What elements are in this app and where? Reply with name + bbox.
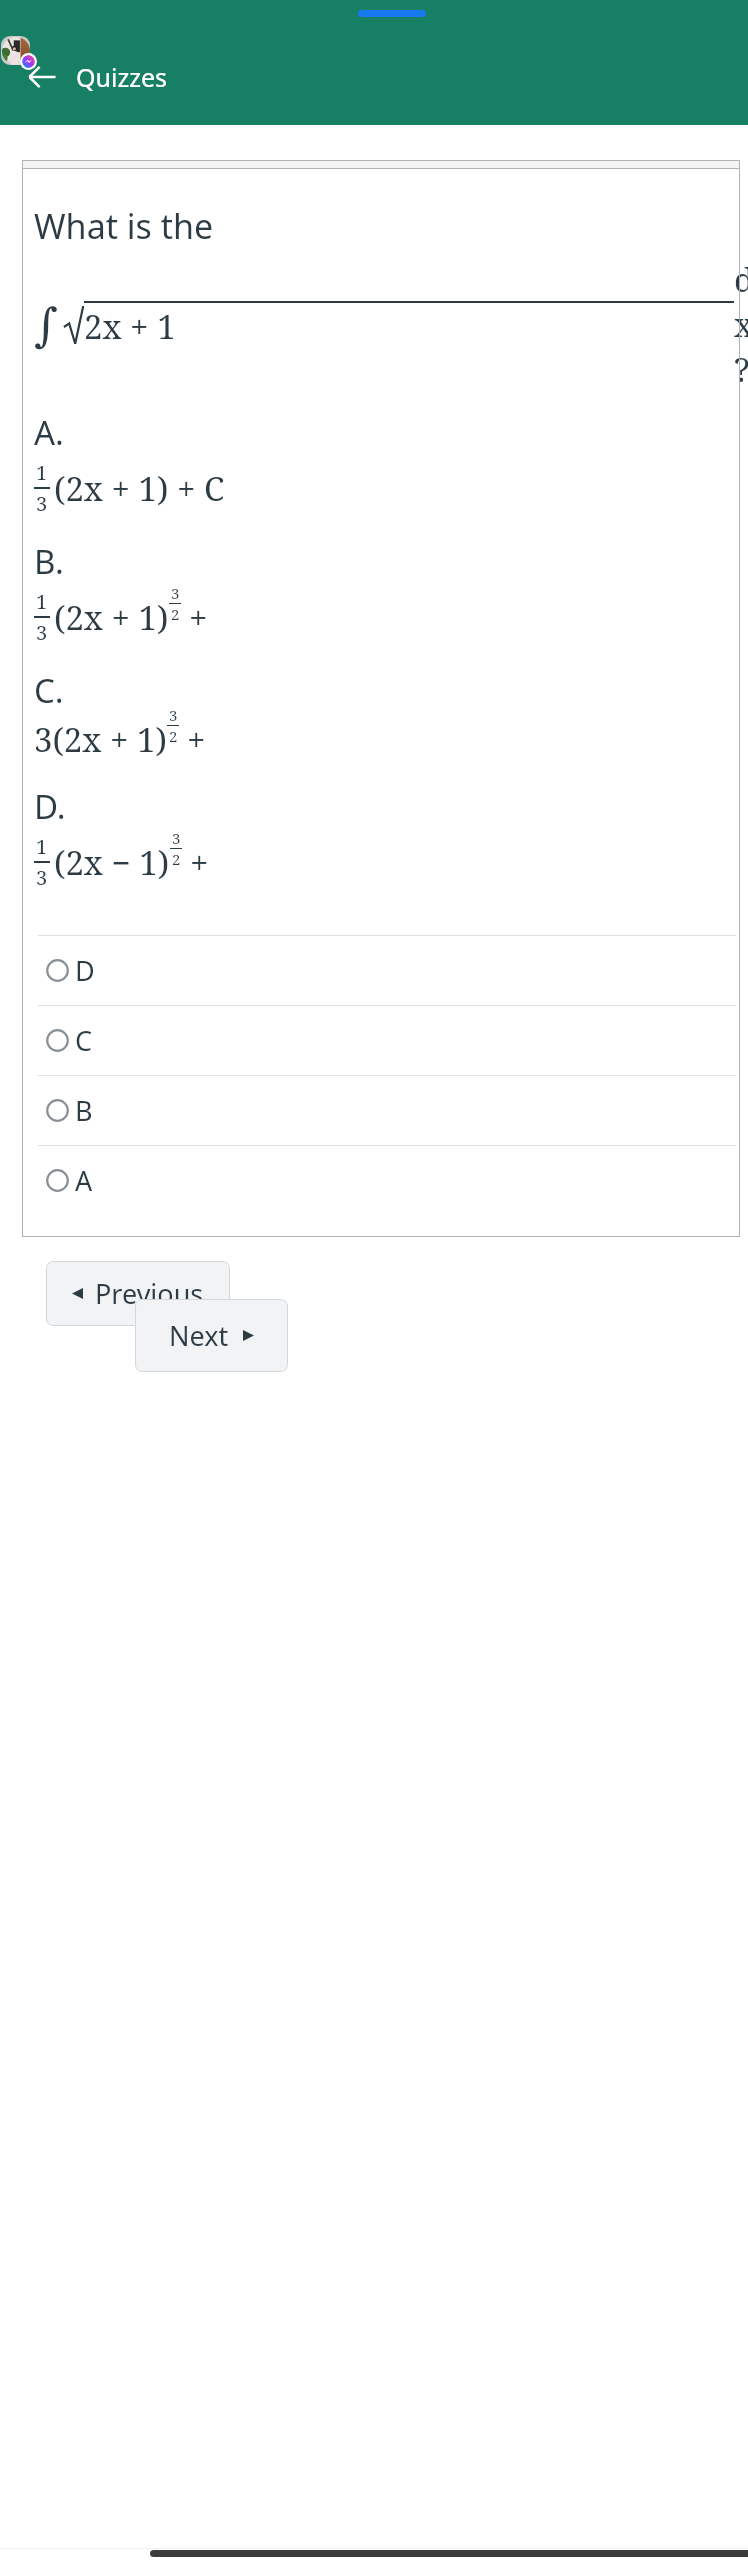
- staticText: D: [75, 952, 95, 989]
- staticText: +: [190, 840, 209, 885]
- staticText: 3(2x + 1): [34, 717, 167, 762]
- staticText: 2: [169, 726, 178, 746]
- staticText: Quizzes: [76, 60, 168, 94]
- staticText: 3: [36, 619, 48, 646]
- staticText: 2x + 1: [84, 304, 176, 349]
- staticText: ∫: [34, 298, 58, 352]
- staticText: 1: [36, 459, 48, 486]
- staticText: C.: [34, 668, 64, 713]
- button[interactable]: B: [38, 1076, 736, 1145]
- staticText: A: [75, 1162, 93, 1199]
- button[interactable]: D: [38, 936, 736, 1005]
- button[interactable]: Back: [14, 49, 70, 105]
- staticText: Next: [169, 1317, 229, 1354]
- staticText: Previous: [95, 1275, 204, 1312]
- staticText: B: [75, 1092, 93, 1129]
- staticText: C: [75, 1022, 93, 1059]
- staticText: 1: [36, 833, 48, 860]
- staticText: +: [189, 595, 208, 640]
- button[interactable]: A: [38, 1146, 736, 1215]
- staticText: 3: [36, 490, 48, 517]
- staticText: +: [187, 717, 206, 762]
- staticText: (2x + 1) + C: [54, 466, 225, 511]
- staticText: 2: [172, 849, 181, 869]
- staticText: (2x + 1): [54, 595, 169, 640]
- staticText: D.: [34, 784, 66, 829]
- button[interactable]: Messenger chat head: [1, 36, 31, 67]
- staticText: 1: [36, 588, 48, 615]
- button[interactable]: Next: [135, 1299, 288, 1372]
- staticText: 2: [171, 604, 180, 624]
- staticText: 3: [171, 583, 180, 603]
- staticText: (2x − 1): [54, 840, 170, 885]
- button[interactable]: Previous: [46, 1261, 230, 1326]
- staticText: 3: [36, 864, 48, 891]
- staticText: A.: [34, 410, 64, 455]
- staticText: B.: [34, 539, 64, 584]
- staticText: 3: [172, 828, 181, 848]
- staticText: What is the: [34, 203, 214, 249]
- staticText: 3: [169, 705, 178, 725]
- button[interactable]: C: [38, 1006, 736, 1075]
